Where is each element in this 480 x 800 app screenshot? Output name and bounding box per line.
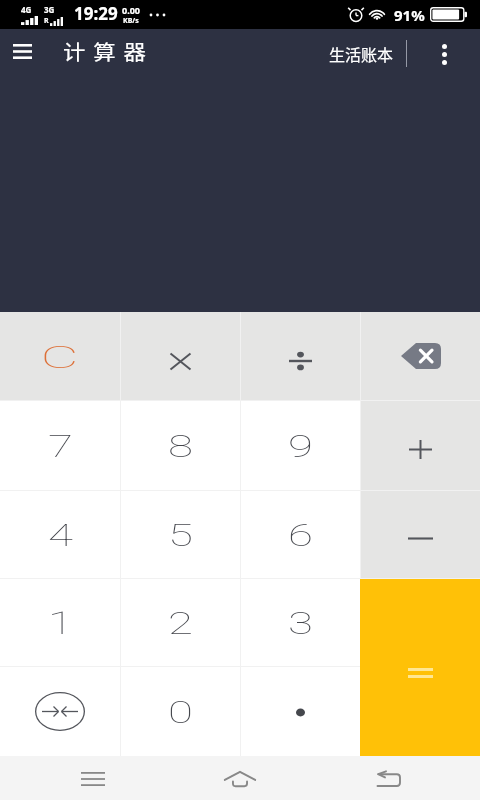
button[interactable]: Recents <box>49 756 137 800</box>
staticText: C <box>40 338 80 375</box>
button[interactable]: 4 <box>0 491 120 578</box>
button[interactable]: Minus <box>361 491 480 578</box>
staticText: 6 <box>288 517 313 553</box>
button[interactable]: 3 <box>241 579 360 666</box>
button[interactable]: Decimal point <box>241 667 360 756</box>
button[interactable]: Divide <box>241 312 360 400</box>
button[interactable]: Multiply <box>121 312 240 400</box>
button[interactable]: Equals <box>360 579 480 756</box>
button[interactable]: Parentheses <box>0 667 120 756</box>
button[interactable]: Clear <box>0 312 120 400</box>
staticText: 91% <box>394 5 425 25</box>
staticText: 0 <box>168 694 193 730</box>
button[interactable]: 1 <box>0 579 120 666</box>
staticText: 1 <box>48 605 73 641</box>
staticText: 生活账本 <box>329 42 394 65</box>
staticText: 19:29 <box>74 2 118 25</box>
button[interactable]: 6 <box>241 491 360 578</box>
staticText: 9 <box>288 428 313 464</box>
staticText: 2 <box>168 605 193 641</box>
button[interactable]: Back <box>343 756 431 800</box>
button[interactable]: 7 <box>0 401 120 490</box>
button[interactable]: 9 <box>241 401 360 490</box>
button[interactable]: 5 <box>121 491 240 578</box>
button[interactable]: Home <box>196 756 284 800</box>
staticText: 4G <box>21 4 32 15</box>
button[interactable]: Plus <box>361 401 480 490</box>
staticText: 计算器 <box>63 37 154 66</box>
staticText: R <box>44 16 49 26</box>
staticText: 8 <box>168 428 193 464</box>
staticText: 7 <box>48 428 73 464</box>
staticText: 3 <box>288 605 313 641</box>
staticText: KB/s <box>123 16 139 26</box>
button[interactable]: 8 <box>121 401 240 490</box>
button[interactable]: Backspace <box>361 312 480 400</box>
button[interactable]: 生活账本 <box>322 29 400 79</box>
button[interactable]: More options <box>422 29 466 79</box>
staticText: 5 <box>168 517 193 553</box>
button[interactable]: 2 <box>121 579 240 666</box>
button[interactable]: 0 <box>121 667 240 756</box>
staticText: 0.00 <box>122 4 140 16</box>
staticText: 3G <box>44 4 55 15</box>
staticText: 4 <box>48 517 73 553</box>
button[interactable]: Menu <box>0 28 45 74</box>
